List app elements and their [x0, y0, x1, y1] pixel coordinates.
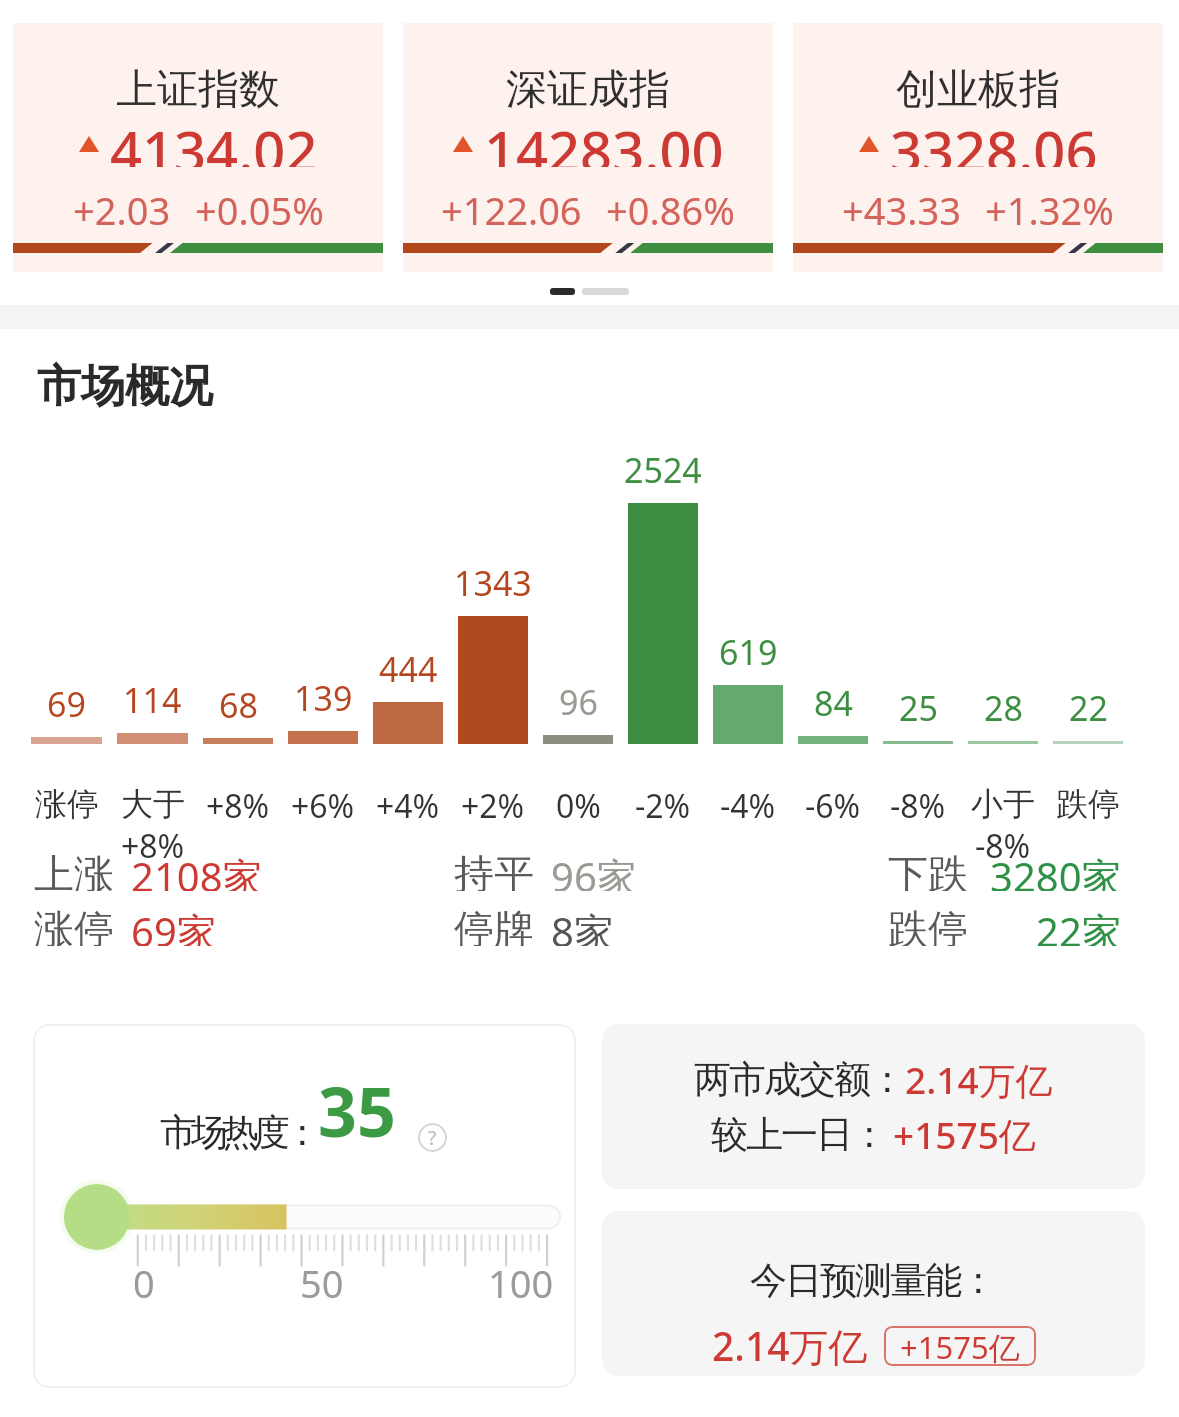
staticText: 8家 [551, 904, 614, 946]
button[interactable]: 市场热度： [33, 1024, 576, 1388]
button[interactable]: 两市成交额： [602, 1024, 1145, 1189]
staticText: 市场概况 [37, 359, 213, 414]
staticText: +2% [461, 784, 525, 828]
staticText: 4134.02 [110, 112, 318, 167]
staticText: 创业板指 [896, 64, 1060, 112]
staticText: 停牌 [454, 904, 534, 946]
staticText: 69 [47, 681, 86, 725]
staticText: 100 [488, 1257, 554, 1309]
staticText: -2% [635, 784, 691, 828]
staticText: 619 [719, 629, 778, 673]
staticText: +1575亿 [900, 1326, 1020, 1366]
staticText: 2108家 [131, 849, 263, 891]
staticText: +8% [206, 784, 270, 828]
button[interactable]: 说明 [418, 1123, 447, 1152]
staticText: 今日预测量能： [751, 1257, 996, 1304]
staticText: 小于 [971, 784, 1035, 824]
staticText: 22 [1069, 685, 1108, 729]
staticText: 25 [899, 685, 938, 729]
staticText: -4% [720, 784, 776, 828]
staticText: 0 [133, 1257, 155, 1309]
staticText: 84 [814, 680, 853, 724]
staticText: +0.86% [606, 184, 735, 236]
staticText: 3328.06 [890, 112, 1098, 167]
staticText: -6% [805, 784, 861, 828]
staticText: 跌停 [888, 904, 968, 946]
staticText: 上涨 [34, 849, 114, 891]
staticText: ? [428, 1125, 437, 1151]
staticText: 69家 [131, 904, 217, 946]
staticText: 35 [318, 1064, 396, 1157]
staticText: 50 [300, 1257, 344, 1309]
staticText: +1.32% [985, 184, 1114, 236]
staticText: 96家 [551, 849, 637, 891]
staticText: -8% [890, 784, 946, 828]
staticText: +6% [291, 784, 355, 828]
staticText: 两市成交额： [695, 1056, 905, 1103]
button[interactable]: 上证指数 [13, 23, 383, 272]
staticText: 22家 [1036, 904, 1122, 946]
staticText: 1343 [454, 560, 532, 604]
staticText: 139 [294, 675, 353, 719]
staticText: 下跌 [888, 849, 968, 891]
staticText: 68 [219, 682, 258, 726]
staticText: 444 [379, 646, 438, 690]
staticText: -8% [975, 824, 1031, 868]
staticText: 114 [123, 677, 182, 721]
staticText: +122.06 [441, 184, 582, 236]
staticText: 较上一日： [712, 1111, 887, 1158]
staticText: 2.14万亿 [905, 1054, 1053, 1105]
staticText: 14283.00 [484, 112, 724, 167]
staticText: 跌停 [1056, 784, 1120, 824]
button[interactable]: 创业板指 [793, 23, 1163, 272]
staticText: 持平 [454, 849, 534, 891]
staticText: 2524 [624, 447, 702, 491]
staticText: +4% [376, 784, 440, 828]
staticText: +1575亿 [893, 1109, 1036, 1160]
button[interactable]: 今日预测量能： [602, 1211, 1145, 1376]
staticText: 深证成指 [506, 64, 670, 112]
button[interactable]: 深证成指 [403, 23, 773, 272]
staticText: 市场热度： [163, 1109, 318, 1156]
staticText: 3280家 [990, 849, 1122, 891]
staticText: 涨停 [34, 904, 114, 946]
staticText: 96 [559, 679, 598, 723]
staticText: 0% [556, 784, 601, 828]
staticText: 大于 [121, 784, 185, 824]
staticText: 涨停 [35, 784, 99, 824]
staticText: +2.03 [73, 184, 171, 236]
staticText: +8% [121, 824, 185, 868]
staticText: 2.14万亿 [712, 1319, 868, 1372]
staticText: 28 [984, 685, 1023, 729]
staticText: +0.05% [195, 184, 324, 236]
staticText: +43.33 [842, 184, 961, 236]
staticText: 上证指数 [116, 64, 280, 112]
